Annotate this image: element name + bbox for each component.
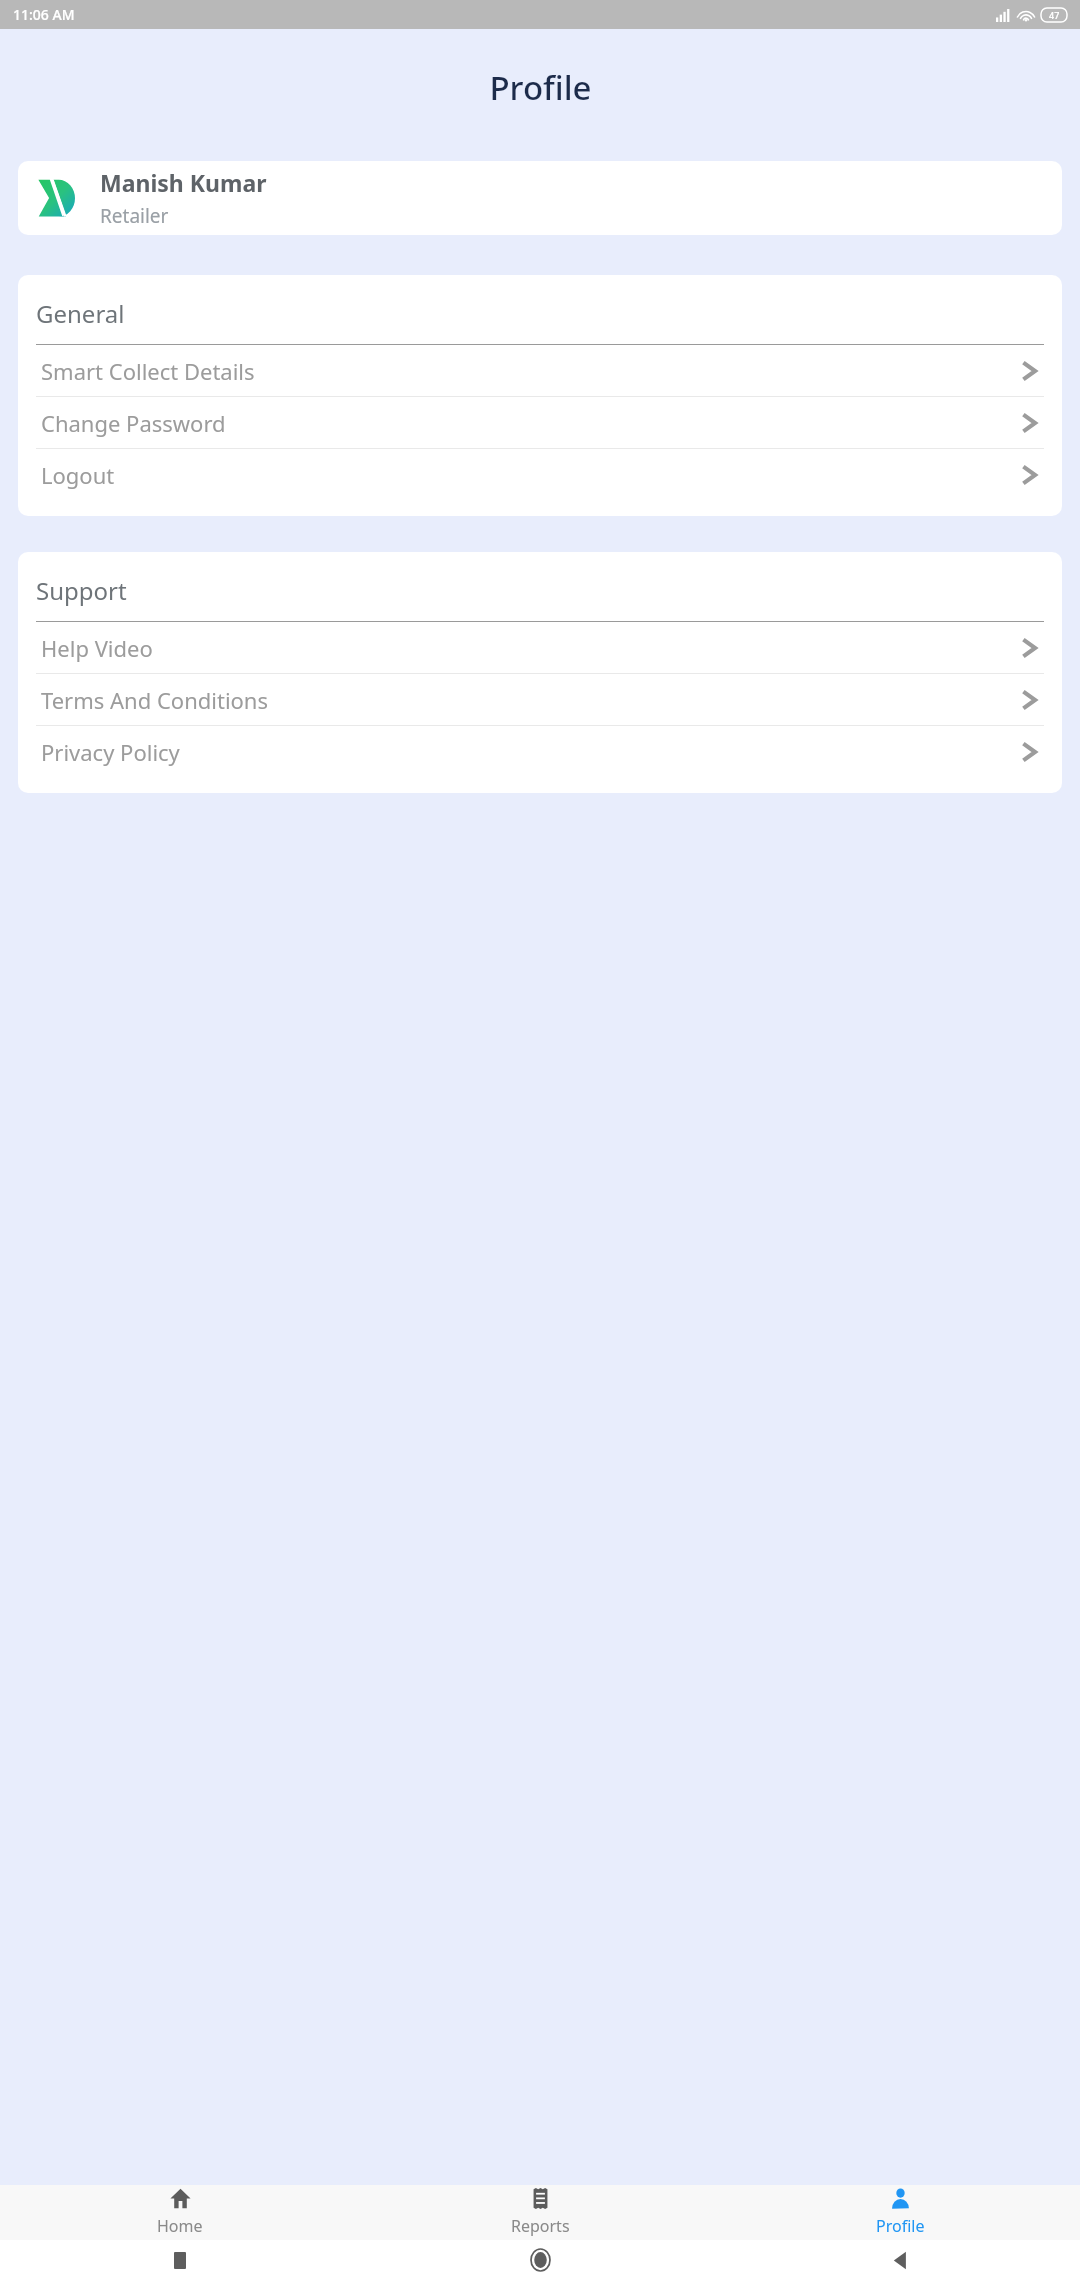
staticText: Help Video: [41, 633, 1021, 663]
staticText: Profile: [489, 65, 592, 110]
other: Home: [531, 2249, 550, 2271]
staticText: Change Password: [41, 408, 1021, 438]
button[interactable]: Help Video: [18, 622, 1062, 673]
staticText: Privacy Policy: [41, 737, 1021, 767]
staticText: Manish Kumar: [100, 167, 267, 198]
button[interactable]: Terms And Conditions: [18, 674, 1062, 725]
other: Reports: [530, 2188, 551, 2209]
other: Recent apps: [174, 2252, 186, 2269]
button[interactable]: Manish Kumar: [18, 161, 1062, 235]
button[interactable]: Home: [360, 2240, 720, 2280]
button[interactable]: Privacy Policy: [18, 726, 1062, 777]
staticText: Terms And Conditions: [41, 685, 1021, 715]
button[interactable]: Logout: [18, 449, 1062, 500]
other: Profile: [890, 2188, 911, 2209]
staticText: Logout: [41, 460, 1021, 490]
button[interactable]: Back: [720, 2240, 1080, 2280]
staticText: General: [36, 297, 125, 330]
staticText: 47: [1049, 9, 1060, 21]
staticText: Retailer: [100, 203, 169, 229]
button[interactable]: Recent apps: [0, 2240, 360, 2280]
button[interactable]: Reports: [360, 2185, 720, 2240]
staticText: 11:06 AM: [13, 5, 75, 24]
staticText: Support: [36, 574, 127, 607]
staticText: Reports: [511, 2215, 570, 2237]
button[interactable]: Change Password: [18, 397, 1062, 448]
other: Home: [170, 2188, 191, 2209]
other: Back: [893, 2251, 907, 2270]
button[interactable]: Smart Collect Details: [18, 345, 1062, 396]
staticText: Profile: [876, 2215, 925, 2237]
button[interactable]: Home: [0, 2185, 360, 2240]
button[interactable]: Profile: [720, 2185, 1080, 2240]
staticText: Smart Collect Details: [41, 356, 1021, 386]
staticText: Home: [157, 2215, 203, 2237]
